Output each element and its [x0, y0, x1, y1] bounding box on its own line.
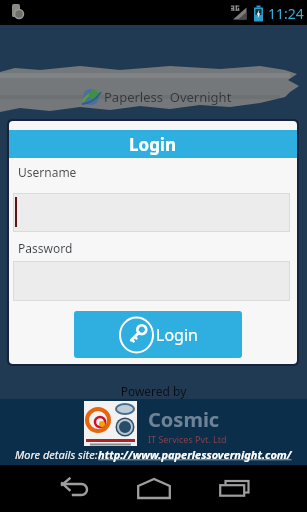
staticText: More details site: — [15, 447, 98, 462]
button[interactable] — [114, 465, 194, 512]
staticText: IT Services Pvt. Ltd — [148, 433, 227, 445]
staticText: Paperless Overnight — [104, 88, 232, 106]
staticText: http://www.paperlessovernight.com/ — [98, 447, 292, 462]
staticText: 11:24 — [268, 4, 304, 23]
staticText: Username — [18, 164, 77, 180]
staticText: Cosmic — [148, 406, 220, 433]
button[interactable] — [194, 465, 274, 512]
staticText: Login — [129, 133, 177, 156]
button[interactable]: Login — [74, 311, 242, 358]
button[interactable] — [13, 261, 290, 301]
button[interactable]: More details site: — [0, 446, 307, 463]
button[interactable] — [13, 193, 290, 232]
staticText: Password — [18, 240, 73, 256]
button[interactable] — [34, 465, 114, 512]
staticText: Login — [156, 324, 198, 346]
staticText: Powered by — [0, 383, 307, 399]
